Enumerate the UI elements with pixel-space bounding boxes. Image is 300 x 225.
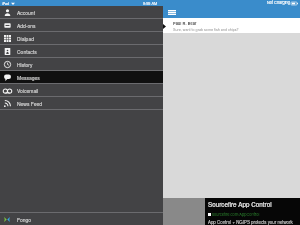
staticText: Dialpad [17, 35, 34, 42]
staticText: Voicemail [17, 87, 39, 94]
button[interactable]: Add-ons [0, 19, 163, 32]
staticText: App Control + NGIPS protects your networ… [208, 219, 300, 225]
staticText: Sure, want to grab some fish and chips? [173, 27, 239, 32]
staticText: Paul R. Bear [173, 20, 197, 26]
staticText: sourcefire.com/AppControl [212, 211, 260, 217]
staticText: Messages [17, 74, 40, 81]
staticText: Sourcefire App Control [208, 200, 272, 209]
staticText: 9:55 AM [143, 1, 158, 6]
staticText: History [17, 61, 33, 68]
button[interactable]: Voicemail [0, 84, 163, 97]
button[interactable]: History [0, 58, 163, 71]
button[interactable]: Dialpad [0, 32, 163, 45]
button[interactable]: Sourcefire App Control [205, 198, 300, 225]
staticText: Fongo [17, 216, 32, 223]
button[interactable]: Messages [0, 71, 163, 84]
button[interactable]: Paul R. Bear [163, 18, 300, 33]
button[interactable]: Contacts [0, 45, 163, 58]
staticText: iPad [2, 1, 10, 6]
staticText: News Feed [17, 100, 43, 107]
staticText: Account [17, 9, 36, 16]
button[interactable]: News Feed [0, 97, 163, 110]
staticText: Not Charging [267, 0, 290, 6]
button[interactable]: Fongo [0, 213, 163, 225]
staticText: Add-ons [17, 22, 36, 29]
button[interactable]: Menu [166, 7, 177, 18]
staticText: Contacts [17, 48, 37, 55]
button[interactable]: Account [0, 6, 163, 19]
